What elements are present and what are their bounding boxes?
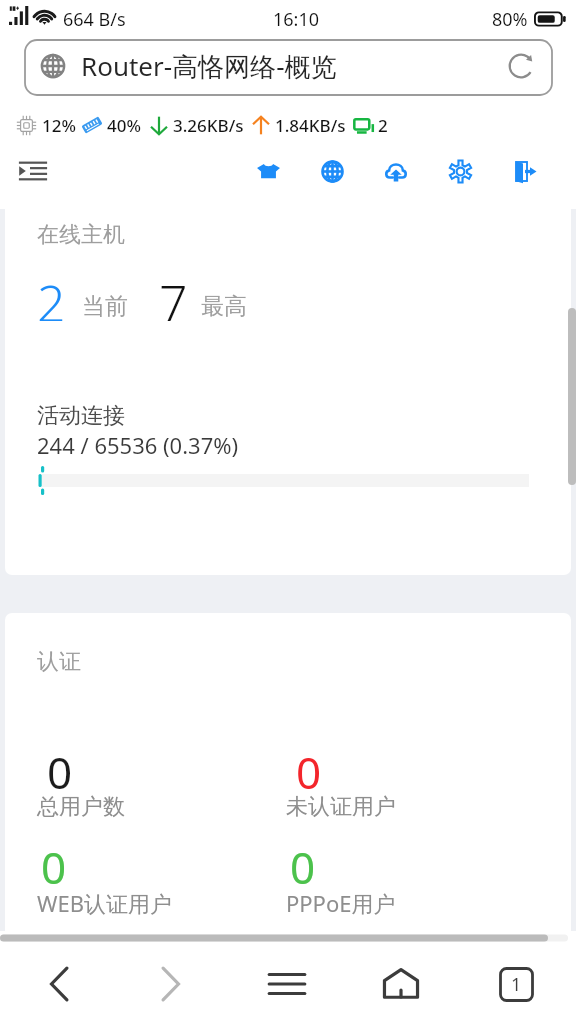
staticText: 最高 — [201, 292, 247, 321]
staticText: 0 — [296, 742, 322, 802]
staticText: PPPoE用户 — [286, 888, 396, 918]
staticText: WEB认证用户 — [37, 888, 172, 918]
staticText: 1.84KB/s — [275, 114, 346, 137]
button[interactable]: Upload — [364, 139, 428, 203]
staticText: 3.26KB/s — [173, 114, 244, 137]
staticText: 2 — [37, 269, 66, 321]
staticText: 总用户数 — [37, 793, 125, 821]
button[interactable]: Back — [48, 966, 70, 1002]
staticText: 当前 — [82, 292, 128, 321]
staticText: 2 — [378, 114, 388, 137]
staticText: 664 B/s — [63, 7, 126, 32]
staticText: 认证 — [37, 648, 81, 676]
button[interactable]: Language — [300, 139, 364, 203]
staticText: 在线主机 — [37, 221, 125, 249]
button[interactable]: Logout — [492, 139, 556, 203]
staticText: 0 — [290, 837, 316, 897]
staticText: Router-高恪网络-概览 — [81, 48, 337, 84]
staticText: 0 — [41, 837, 67, 897]
staticText: 12% — [42, 114, 76, 137]
staticText: 活动连接 — [37, 402, 125, 430]
button[interactable]: Router-高恪网络-概览 — [25, 40, 552, 84]
staticText: 244 / 65536 (0.37%) — [37, 430, 239, 460]
staticText: 0 — [47, 742, 73, 802]
staticText: 未认证用户 — [286, 793, 396, 821]
button[interactable]: Reload — [500, 40, 544, 84]
button[interactable]: Theme — [236, 139, 300, 203]
staticText: 40% — [107, 114, 141, 137]
button[interactable]: Tabs — [499, 967, 534, 1002]
button[interactable]: Forward — [160, 966, 182, 1002]
staticText: 1 — [511, 972, 522, 997]
button[interactable]: Menu — [6, 144, 60, 198]
button[interactable]: Menu — [268, 970, 306, 998]
staticText: 7 — [159, 269, 188, 321]
button[interactable]: Home — [382, 967, 420, 1001]
staticText: 80% — [492, 7, 528, 32]
staticText: 16:10 — [273, 7, 320, 32]
button[interactable]: Settings — [428, 139, 492, 203]
